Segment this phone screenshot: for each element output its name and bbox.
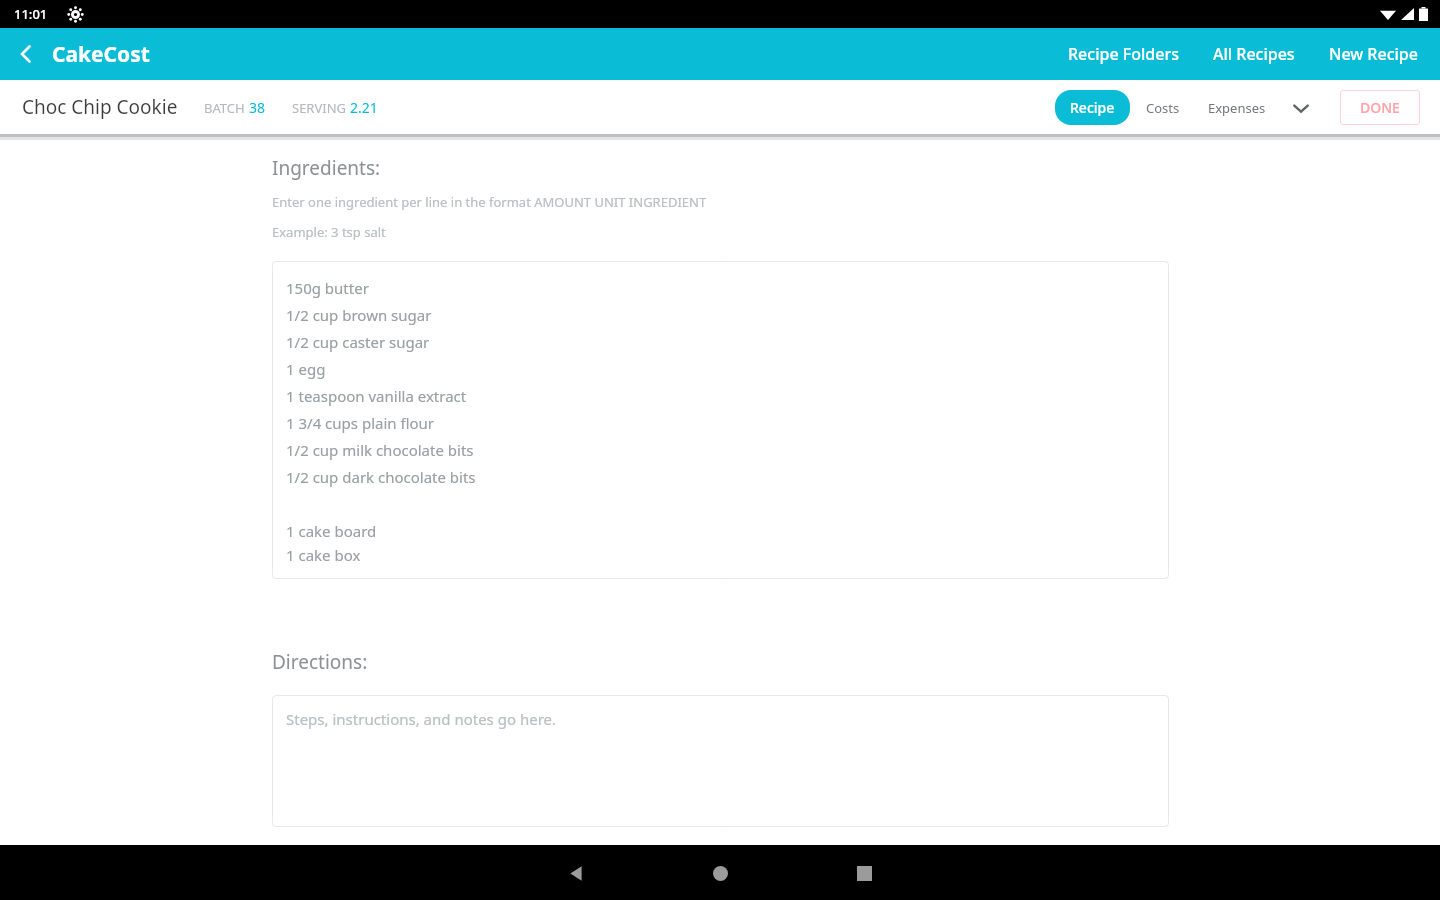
staticText: SERVING [292,99,350,117]
staticText: Recipe [1070,98,1115,117]
staticText: Ingredients: [272,155,381,181]
button[interactable]: 150g butter [272,261,1169,579]
staticText: CakeCost [52,40,150,69]
staticText: 1/2 cup milk chocolate bits [286,440,474,460]
staticText: Recipe Folders [1068,43,1179,65]
button[interactable]: Expenses [1200,91,1274,125]
staticText: Expenses [1208,99,1266,117]
staticText: All Recipes [1213,43,1295,65]
staticText: 1 teaspoon vanilla extract [286,386,467,406]
button[interactable]: Costs [1138,91,1188,125]
button[interactable]: New Recipe [1321,34,1426,74]
staticText: 1 cake board [286,521,377,541]
staticText: 1/2 cup caster sugar [286,332,430,352]
button[interactable]: Choc Chip Cookie [22,94,178,120]
staticText: 1/2 cup dark chocolate bits [286,467,476,487]
staticText: 11:01 [14,5,48,23]
button[interactable]: Back [554,851,598,895]
staticText: Example: 3 tsp salt [272,223,386,241]
staticText: BATCH [204,99,249,117]
staticText: Costs [1146,99,1180,117]
staticText: 1 egg [286,359,326,379]
staticText: 1 3/4 cups plain flour [286,413,435,433]
staticText: 38 [249,98,266,117]
staticText: Directions: [272,649,368,675]
button[interactable]: More tabs [1284,91,1318,125]
staticText: 150g butter [286,278,369,298]
staticText: New Recipe [1329,43,1418,65]
staticText: Steps, instructions, and notes go here. [286,709,557,729]
button[interactable]: Recents [842,851,886,895]
button[interactable]: Recipe [1055,90,1130,125]
staticText: Enter one ingredient per line in the for… [272,193,707,211]
button[interactable]: Recipe Folders [1060,34,1187,74]
staticText: 2.21 [350,98,378,117]
button[interactable]: Back [0,28,52,80]
staticText: 1 cake box [286,545,361,565]
button[interactable]: DONE [1340,90,1420,125]
staticText: 1/2 cup brown sugar [286,305,432,325]
button[interactable]: All Recipes [1205,34,1303,74]
button[interactable]: Steps, instructions, and notes go here. [272,695,1169,827]
staticText: DONE [1360,98,1400,117]
button[interactable]: Home [698,851,742,895]
